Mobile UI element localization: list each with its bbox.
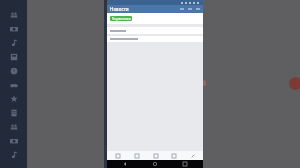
button[interactable]: Clock bbox=[0, 64, 27, 78]
button[interactable]: Feed bbox=[109, 151, 126, 160]
button[interactable]: Recents bbox=[173, 160, 197, 168]
button[interactable]: Подписаться bbox=[110, 16, 132, 21]
button[interactable]: More bbox=[194, 5, 202, 13]
button[interactable]: Contacts bbox=[0, 8, 27, 22]
button[interactable]: Photos bbox=[147, 151, 164, 160]
staticText: Подписаться bbox=[112, 17, 131, 21]
button[interactable]: Maps bbox=[0, 134, 27, 148]
button[interactable]: Marker bbox=[289, 77, 300, 90]
button[interactable]: Refresh bbox=[186, 5, 194, 13]
button[interactable]: Video bbox=[165, 151, 182, 160]
button[interactable]: Mail bbox=[0, 120, 27, 134]
button[interactable]: Store bbox=[0, 148, 27, 162]
button[interactable]: Back bbox=[113, 160, 137, 168]
button[interactable]: Search bbox=[178, 5, 186, 13]
button[interactable]: Music bbox=[0, 36, 27, 50]
button[interactable]: Files bbox=[0, 106, 27, 120]
staticText: Новости bbox=[110, 6, 129, 12]
button[interactable]: Calculator bbox=[0, 50, 27, 64]
button[interactable]: Edit bbox=[184, 151, 201, 160]
button[interactable]: Groups bbox=[128, 151, 145, 160]
button[interactable]: Favorites bbox=[0, 92, 27, 106]
button[interactable]: Camera bbox=[0, 22, 27, 36]
button[interactable]: Games bbox=[0, 78, 27, 92]
button[interactable]: Новости bbox=[110, 5, 178, 13]
button[interactable]: Home bbox=[143, 160, 167, 168]
